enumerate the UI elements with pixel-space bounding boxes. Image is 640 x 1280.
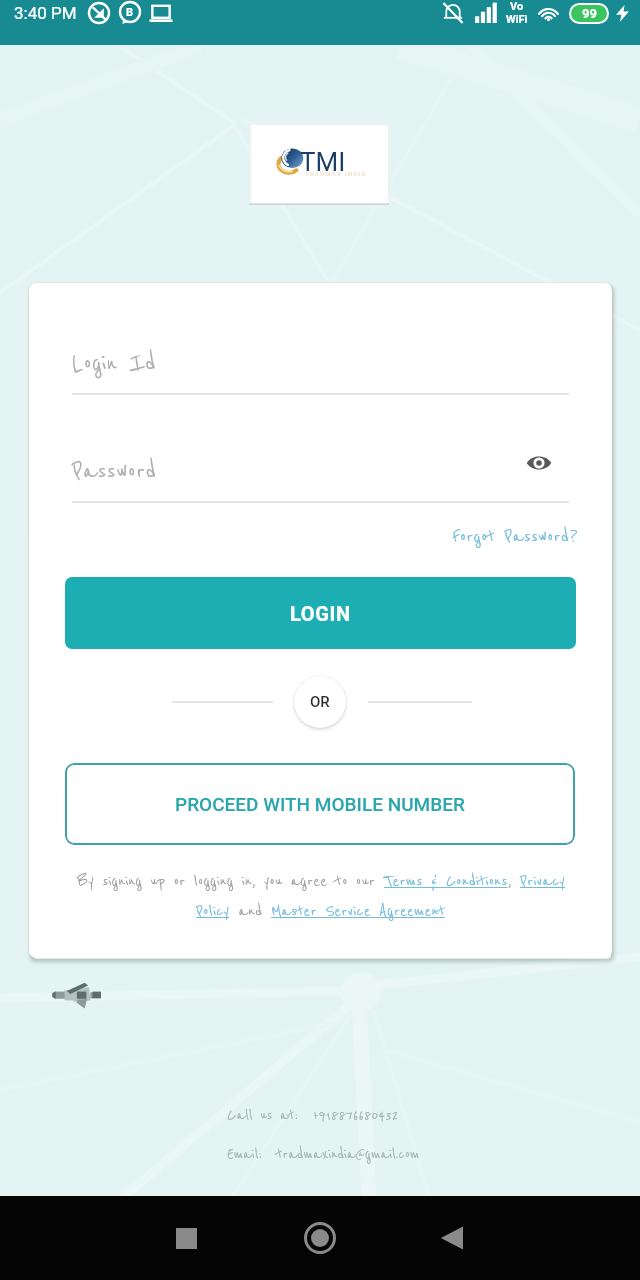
button[interactable]: Show password: [523, 447, 555, 479]
staticText: Call us at: +918876680432: [227, 1106, 399, 1124]
button[interactable]: Master Service Agreement: [271, 901, 445, 921]
button[interactable]: Home: [293, 1211, 347, 1265]
staticText: Privacy: [520, 871, 565, 891]
staticText: Forgot Password?: [452, 525, 578, 548]
button[interactable]: PROCEED WITH MOBILE NUMBER: [65, 763, 575, 845]
staticText: TRADMAX INDIA: [305, 170, 367, 177]
staticText: PROCEED WITH MOBILE NUMBER: [175, 793, 465, 815]
staticText: ,: [508, 871, 520, 891]
staticText: Email: tradmaxindia@gmail.com: [227, 1145, 420, 1163]
staticText: TMI: [300, 147, 346, 177]
button[interactable]: Forgot Password?: [418, 520, 578, 552]
staticText: OR: [310, 693, 330, 711]
button[interactable]: Recent apps: [159, 1211, 213, 1265]
staticText: Login Id: [72, 348, 156, 378]
button[interactable]: Login Id: [72, 343, 372, 383]
button[interactable]: LOGIN: [65, 577, 576, 649]
button[interactable]: Terms & Conditions: [384, 871, 508, 891]
button[interactable]: Policy: [196, 901, 230, 921]
staticText: Vo: [510, 0, 524, 13]
staticText: 3:40 PM: [14, 3, 77, 23]
button[interactable]: Password: [72, 451, 372, 491]
staticText: Master Service Agreement: [271, 901, 445, 921]
staticText: B: [126, 6, 134, 19]
staticText: Policy: [196, 901, 230, 921]
button[interactable]: Privacy: [520, 871, 565, 891]
staticText: and: [230, 901, 271, 921]
staticText: LOGIN: [290, 602, 351, 625]
staticText: Password: [72, 456, 157, 486]
button[interactable]: Back: [427, 1211, 481, 1265]
staticText: 99: [582, 6, 597, 21]
staticText: Terms & Conditions: [384, 871, 508, 891]
staticText: WiFi: [506, 13, 528, 26]
staticText: By signing up or logging in, you agree t…: [77, 871, 384, 891]
